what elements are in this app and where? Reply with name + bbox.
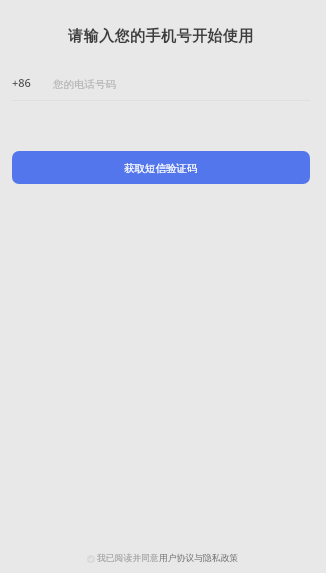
staticText: 请输入您的手机号开始使用: [0, 27, 324, 46]
button[interactable]: 获取短信验证码: [12, 151, 310, 184]
button[interactable]: +86: [12, 70, 326, 96]
staticText: 您的电话号码: [53, 78, 116, 91]
other: Agree to terms: [87, 555, 95, 563]
staticText: +86: [12, 75, 31, 90]
button[interactable]: Agree to terms: [87, 553, 239, 564]
staticText: 我已阅读并同意: [97, 553, 159, 564]
staticText: 用户协议与隐私政策: [159, 553, 239, 564]
staticText: 获取短信验证码: [124, 162, 198, 175]
